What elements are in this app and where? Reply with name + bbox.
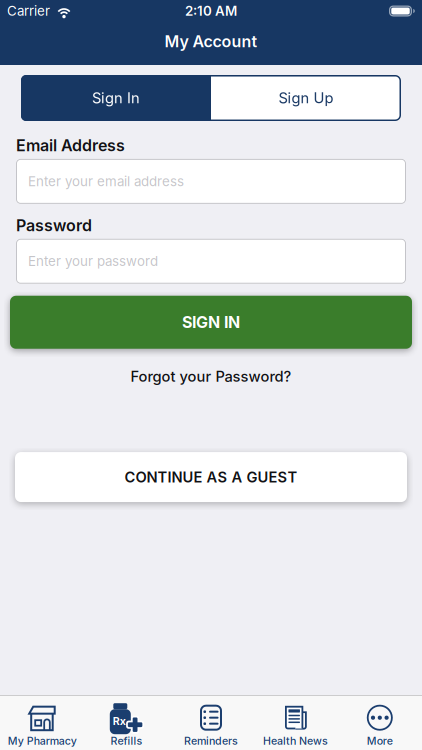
- staticText: My Pharmacy: [8, 735, 77, 747]
- staticText: Enter your password: [28, 253, 158, 269]
- button[interactable]: My Pharmacy: [0, 704, 84, 747]
- button[interactable]: Forgot your Password?: [130, 368, 291, 385]
- staticText: Password: [16, 216, 92, 235]
- staticText: CONTINUE AS A GUEST: [124, 468, 297, 486]
- staticText: Reminders: [184, 735, 238, 747]
- button[interactable]: Rx: [84, 704, 169, 747]
- staticText: Email Address: [16, 136, 125, 155]
- button[interactable]: Reminders: [169, 704, 253, 747]
- staticText: Forgot your Password?: [130, 368, 291, 385]
- staticText: 2:10 AM: [185, 3, 237, 19]
- staticText: Health News: [263, 735, 328, 747]
- staticText: My Account: [164, 32, 257, 51]
- button[interactable]: SIGN IN: [10, 296, 412, 349]
- staticText: Sign In: [92, 89, 140, 107]
- staticText: Carrier: [7, 3, 50, 19]
- staticText: More: [367, 735, 393, 747]
- button[interactable]: Sign Up: [211, 75, 401, 121]
- button[interactable]: Sign In: [21, 75, 211, 121]
- staticText: SIGN IN: [182, 313, 240, 332]
- staticText: Rx: [113, 715, 126, 727]
- staticText: Refills: [111, 735, 143, 747]
- button[interactable]: CONTINUE AS A GUEST: [15, 452, 407, 502]
- staticText: Sign Up: [278, 89, 333, 107]
- button[interactable]: More: [338, 704, 422, 747]
- staticText: Enter your email address: [28, 173, 184, 189]
- button[interactable]: Health News: [253, 704, 338, 747]
